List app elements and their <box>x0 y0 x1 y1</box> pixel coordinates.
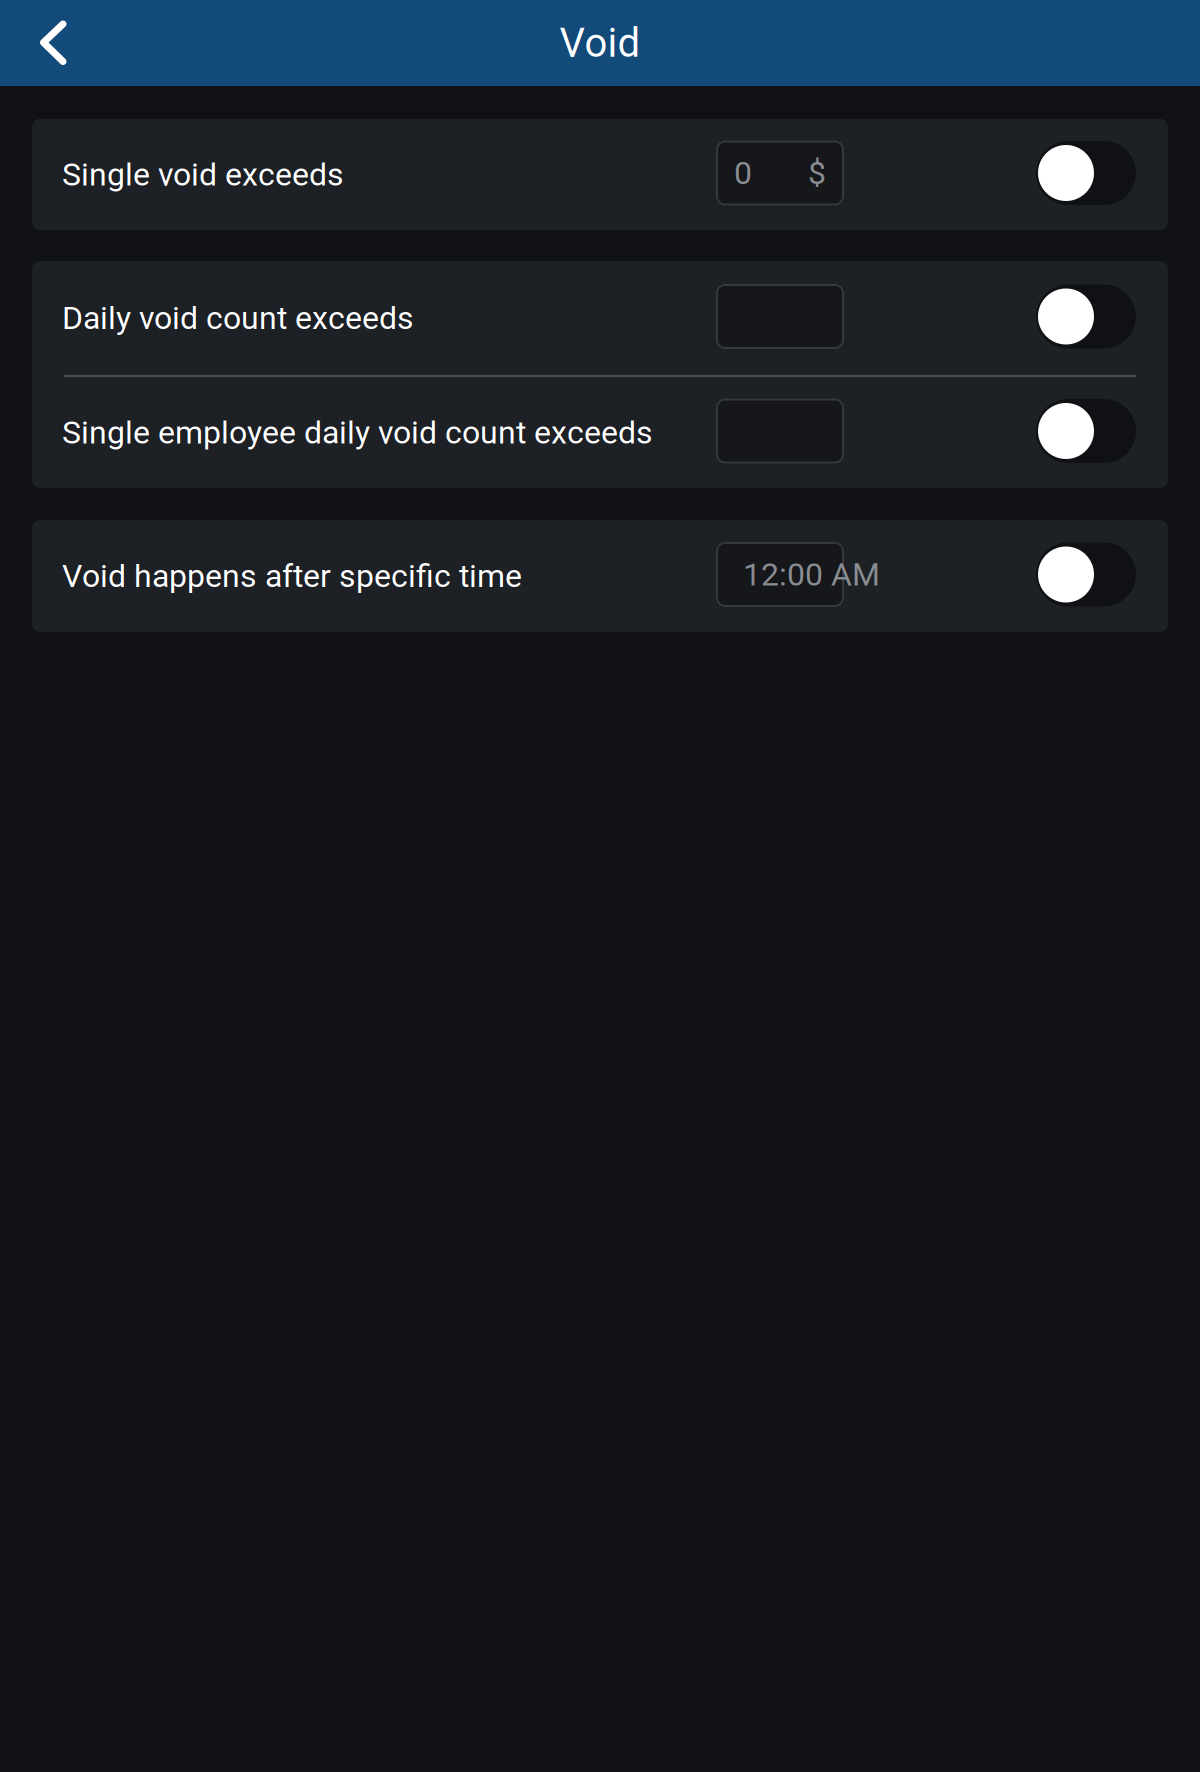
staticText: Single employee daily void count exceeds <box>62 414 653 451</box>
staticText: Daily void count exceeds <box>62 299 414 337</box>
button[interactable]: Back <box>0 0 87 86</box>
staticText: Single void exceeds <box>62 156 344 193</box>
button[interactable]: Single void exceeds <box>1036 141 1136 208</box>
button[interactable]: Void happens after specific time <box>1036 542 1136 609</box>
staticText: Void <box>559 20 640 66</box>
button[interactable]: Daily void count exceeds <box>1036 284 1136 351</box>
button[interactable]: Single employee daily void count exceeds <box>1036 399 1136 466</box>
staticText: 0 <box>734 154 752 192</box>
staticText: $ <box>808 154 826 192</box>
staticText: 12:00 AM <box>743 556 880 593</box>
staticText: Void happens after specific time <box>62 557 522 595</box>
